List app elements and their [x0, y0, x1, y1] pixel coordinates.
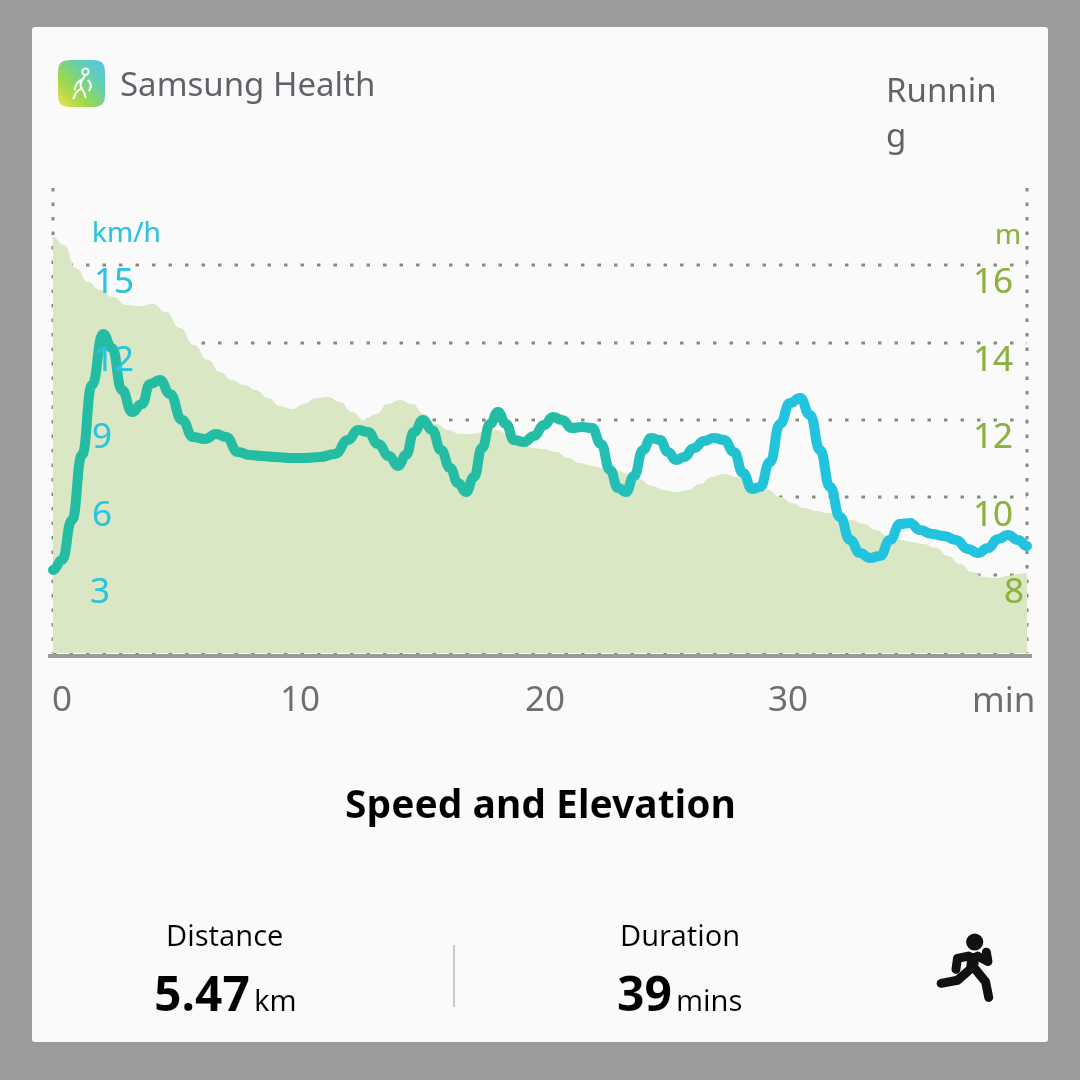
- staticText: 14: [973, 334, 1014, 382]
- staticText: km/h: [92, 212, 161, 250]
- staticText: 15: [94, 256, 135, 304]
- staticText: 10: [973, 489, 1014, 537]
- staticText: km: [254, 980, 297, 1019]
- staticText: 16: [973, 256, 1014, 304]
- staticText: Distance: [166, 915, 284, 954]
- button[interactable]: Running workout: [920, 917, 1020, 1017]
- staticText: 30: [768, 674, 809, 722]
- staticText: 3: [90, 566, 111, 614]
- staticText: 6: [92, 489, 113, 537]
- staticText: 5.47: [154, 960, 250, 1025]
- staticText: 0: [52, 674, 73, 722]
- staticText: Samsung Health: [120, 61, 376, 106]
- button[interactable]: Running: [886, 67, 1016, 157]
- staticText: 9: [92, 411, 113, 459]
- staticText: Duration: [620, 915, 741, 954]
- button[interactable]: Samsung Health: [58, 60, 376, 107]
- staticText: Running: [886, 67, 1016, 157]
- button[interactable]: Distance: [140, 915, 310, 1025]
- staticText: m: [995, 214, 1022, 252]
- staticText: min: [972, 675, 1036, 723]
- staticText: 12: [973, 411, 1014, 459]
- staticText: Speed and Elevation: [345, 776, 736, 829]
- staticText: 39: [617, 960, 672, 1025]
- button[interactable]: Duration: [595, 915, 765, 1025]
- staticText: 20: [525, 674, 566, 722]
- staticText: 12: [94, 334, 135, 382]
- staticText: 8: [1004, 566, 1025, 614]
- staticText: mins: [676, 980, 743, 1019]
- staticText: 10: [280, 674, 321, 722]
